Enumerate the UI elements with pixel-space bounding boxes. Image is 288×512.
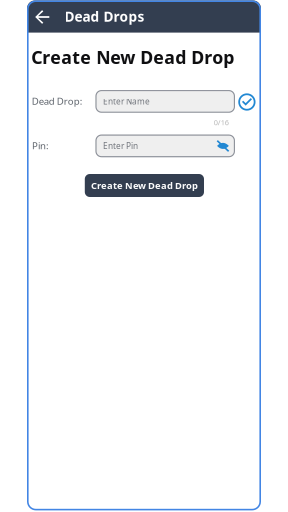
staticText: Dead Drop: xyxy=(32,95,83,108)
staticText: Pin: xyxy=(32,139,49,152)
staticText: Dead Drops xyxy=(64,7,144,26)
staticText: Create New Dead Drop xyxy=(91,179,198,192)
button[interactable]: Create New Dead Drop xyxy=(85,174,204,197)
button[interactable]: Back xyxy=(27,0,261,33)
staticText: 0/16 xyxy=(214,117,229,127)
staticText: Create New Dead Drop xyxy=(31,45,234,69)
staticText: Enter Pin xyxy=(103,140,138,152)
button[interactable]: Confirm name xyxy=(238,93,255,111)
staticText: Enter Name xyxy=(103,96,150,107)
button[interactable]: Show PIN xyxy=(216,136,235,156)
